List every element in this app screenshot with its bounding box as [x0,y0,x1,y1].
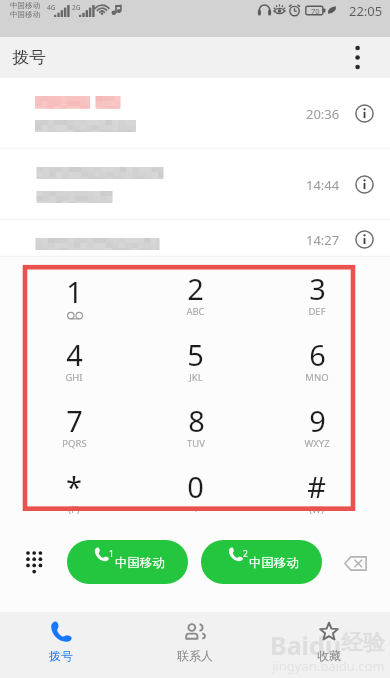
staticText: 2G [72,3,81,12]
staticText: GHI [65,371,83,384]
staticText: TUV [187,437,205,450]
staticText: 拨号 [12,47,46,68]
staticText: 经验 [341,629,385,657]
staticText: 7 [66,401,83,440]
button[interactable]: 联系人 [130,612,260,678]
button[interactable]: 0 [135,456,256,522]
button[interactable]: 4 [13,324,135,390]
staticText: 2 [187,269,204,308]
button[interactable]: More options [342,37,390,78]
button[interactable]: 2 [135,258,256,324]
staticText: 联系人 [177,648,213,663]
button[interactable]: 7 [13,390,135,456]
staticText: 8 [188,401,205,440]
staticText: 中国移动 [10,1,40,10]
staticText: PQRS [62,437,87,450]
staticText: 14:27 [306,231,340,249]
button[interactable]: 20:36 [0,78,390,149]
staticText: jingyan.baidu.com [272,657,385,675]
staticText: Baidu [270,628,342,662]
staticText: 3 [309,269,326,308]
button[interactable]: 拨号 [0,612,130,678]
button[interactable]: # [256,456,377,522]
button[interactable]: Call details [355,175,374,194]
staticText: 14:44 [306,176,340,194]
staticText: 收藏 [317,648,341,663]
staticText: 9 [309,401,326,440]
button[interactable]: Keypad [20,548,48,576]
button[interactable]: 9 [256,390,377,456]
staticText: 2 [243,548,248,560]
staticText: 中国移动 [115,555,165,571]
staticText: JKL [189,371,203,384]
staticText: 0 [187,467,204,506]
staticText: MNO [305,371,329,384]
button[interactable]: 14:27 [0,220,390,257]
staticText: # [307,467,326,506]
staticText: 中国移动 [10,10,40,19]
staticText: (W) [309,503,324,516]
staticText: WXYZ [304,437,330,450]
staticText: 20:36 [306,105,340,123]
button[interactable]: * [13,456,135,522]
staticText: 70 [311,6,320,16]
staticText: (P) [68,503,80,516]
button[interactable]: 2 [201,540,322,584]
button[interactable]: 收藏 [260,612,390,678]
button[interactable]: 5 [135,324,256,390]
button[interactable]: 6 [256,324,377,390]
staticText: 中国移动 [249,555,299,571]
staticText: 22:05 [349,2,383,20]
staticText: 1 [66,272,83,311]
button[interactable]: 14:44 [0,149,390,220]
button[interactable]: Call details [355,104,374,123]
button[interactable]: 1 [67,540,188,584]
staticText: 1 [109,548,114,560]
button[interactable]: 1 [13,258,135,324]
staticText: 拨号 [49,648,73,663]
button[interactable]: Call details [355,230,374,249]
button[interactable]: 8 [135,390,256,456]
staticText: 5 [187,335,204,374]
button[interactable]: Delete [340,548,370,578]
staticText: 4 [66,335,83,374]
staticText: 4G [47,3,56,12]
staticText: * [66,467,82,506]
button[interactable]: 3 [256,258,377,324]
staticText: 6 [309,335,326,374]
staticText: ABC [186,305,205,318]
staticText: + [193,503,199,516]
staticText: DEF [308,305,326,318]
